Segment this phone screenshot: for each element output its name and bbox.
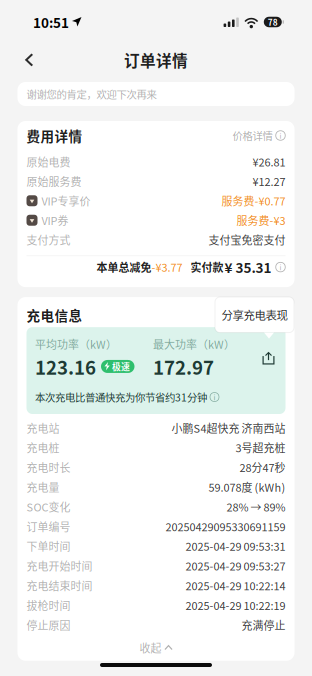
- staticText: 费用详情: [26, 126, 82, 145]
- staticText: 价格详情: [232, 128, 272, 143]
- staticText: 平均功率（kW）: [35, 336, 117, 352]
- button[interactable]: 分享: [258, 348, 278, 369]
- staticText: 充电开始时间: [26, 558, 92, 574]
- button[interactable]: 价格详情: [232, 128, 285, 143]
- staticText: -¥3.77: [151, 259, 182, 275]
- staticText: 2025-04-29 10:22:19: [185, 597, 285, 613]
- staticText: 10:51: [33, 12, 69, 32]
- staticText: ¥ 35.31: [224, 257, 271, 277]
- staticText: 支付宝免密支付: [208, 232, 285, 248]
- button[interactable]: Back: [16, 45, 42, 74]
- staticText: ¥26.81: [252, 154, 285, 170]
- staticText: 28% → 89%: [226, 499, 285, 515]
- staticText: 充电信息: [26, 305, 82, 325]
- staticText: 拔枪时间: [26, 597, 70, 613]
- staticText: 充电桩: [26, 440, 59, 455]
- staticText: 分享充电表现: [221, 306, 287, 323]
- staticText: 服务费-¥3: [236, 212, 285, 228]
- staticText: 收起: [139, 640, 161, 656]
- staticText: 充电站: [26, 420, 59, 436]
- staticText: 78: [268, 16, 278, 28]
- staticText: 123.16: [35, 353, 96, 380]
- staticText: 2025-04-29 09:53:31: [185, 538, 285, 554]
- staticText: 28分47秒: [239, 459, 285, 475]
- staticText: 2025-04-29 09:53:27: [185, 558, 285, 574]
- staticText: 订单详情: [124, 49, 188, 71]
- staticText: 20250429095330691159: [165, 518, 285, 534]
- staticText: 本次充电比普通快充为你节省约31分钟: [35, 389, 207, 405]
- staticText: 小鹏S4超快充 济南西站: [171, 420, 285, 436]
- staticText: 充电结束时间: [26, 578, 92, 593]
- staticText: 172.97: [153, 353, 214, 380]
- staticText: 本单总减免: [96, 259, 151, 275]
- button[interactable]: 收起: [26, 637, 285, 659]
- staticText: 充满停止: [241, 617, 285, 633]
- staticText: 订单编号: [26, 518, 70, 534]
- staticText: i: [279, 262, 281, 272]
- staticText: SOC变化: [26, 499, 70, 515]
- staticText: 服务费-¥0.77: [221, 193, 285, 209]
- staticText: 下单时间: [26, 538, 70, 554]
- staticText: 原始电费: [26, 154, 70, 170]
- staticText: 2025-04-29 10:22:14: [185, 578, 285, 593]
- staticText: 谢谢您的肯定，欢迎下次再来: [26, 86, 156, 102]
- staticText: 支付方式: [26, 232, 70, 248]
- staticText: 59.078度 (kWh): [208, 479, 285, 495]
- staticText: 最大功率（kW）: [153, 336, 235, 352]
- staticText: 3号超充桩: [235, 440, 285, 455]
- staticText: VIP专享价: [41, 193, 90, 209]
- staticText: i: [279, 130, 281, 141]
- staticText: i: [213, 392, 215, 402]
- staticText: 原始服务费: [26, 173, 81, 189]
- staticText: ¥12.27: [252, 173, 285, 189]
- staticText: 停止原因: [26, 617, 70, 633]
- staticText: 实付款: [190, 259, 223, 275]
- staticText: VIP券: [41, 212, 68, 228]
- staticText: 充电量: [26, 479, 59, 495]
- staticText: 极速: [112, 360, 130, 373]
- staticText: 充电时长: [26, 459, 70, 475]
